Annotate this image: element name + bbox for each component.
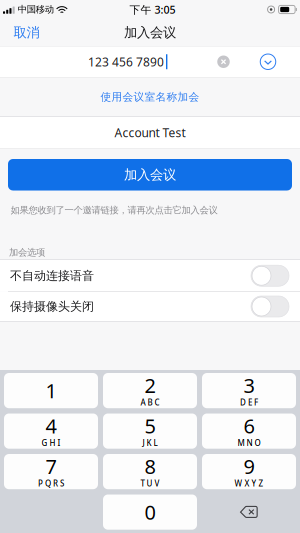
button[interactable]: 保持摄像头关闭 xyxy=(0,292,300,321)
staticText: G H I xyxy=(41,438,60,448)
staticText: P Q R S xyxy=(38,478,64,489)
button[interactable]: 使用会议室名称加会 xyxy=(0,77,300,116)
staticText: 5 xyxy=(144,412,155,439)
staticText: 6 xyxy=(243,412,254,439)
button[interactable]: 加入会议 xyxy=(8,159,292,190)
button[interactable]: Clear text xyxy=(215,54,231,70)
button[interactable]: 2 xyxy=(103,373,197,408)
staticText: 7 xyxy=(45,453,56,480)
staticText: 使用会议室名称加会 xyxy=(100,90,199,103)
staticText: 1 xyxy=(45,377,56,404)
staticText: 4 xyxy=(45,412,56,439)
button[interactable]: Show recent meeting IDs xyxy=(259,53,276,70)
staticText: 9 xyxy=(243,453,254,480)
button[interactable]: 9 xyxy=(202,454,296,489)
staticText: T U V xyxy=(140,478,159,489)
staticText: 保持摄像头关闭 xyxy=(10,299,94,314)
staticText: Account Test xyxy=(114,124,185,140)
staticText: 3 xyxy=(243,372,254,399)
button[interactable]: 8 xyxy=(103,454,197,489)
staticText: 123 456 7890 xyxy=(88,54,164,70)
staticText: 下午 3:05 xyxy=(129,2,175,17)
staticText: 加入会议 xyxy=(124,24,176,41)
button[interactable]: 取消 xyxy=(0,19,48,46)
staticText: 8 xyxy=(144,453,155,480)
staticText: 2 xyxy=(144,372,155,399)
staticText: D E F xyxy=(240,397,258,408)
button[interactable]: 1 xyxy=(4,373,98,408)
staticText: 加会选项 xyxy=(9,246,45,258)
button[interactable]: 5 xyxy=(103,413,197,449)
staticText: J K L xyxy=(142,438,157,448)
button[interactable]: 不自动连接语音 xyxy=(0,260,300,291)
staticText: 加入会议 xyxy=(124,167,176,183)
staticText: 不自动连接语音 xyxy=(10,268,94,283)
button[interactable]: 0 xyxy=(103,494,197,530)
staticText: 0 xyxy=(144,499,155,525)
button[interactable]: 4 xyxy=(4,413,98,449)
staticText: 如果您收到了一个邀请链接，请再次点击它加入会议 xyxy=(10,204,217,216)
button[interactable]: 3 xyxy=(202,373,296,408)
staticText: W X Y Z xyxy=(234,478,263,489)
button[interactable]: 6 xyxy=(202,413,296,449)
button[interactable]: Delete xyxy=(202,494,296,530)
staticText: M N O xyxy=(237,438,260,448)
staticText: A B C xyxy=(140,397,159,408)
staticText: 取消 xyxy=(14,24,40,41)
staticText: 中国移动 xyxy=(18,4,54,15)
button[interactable]: 7 xyxy=(4,454,98,489)
